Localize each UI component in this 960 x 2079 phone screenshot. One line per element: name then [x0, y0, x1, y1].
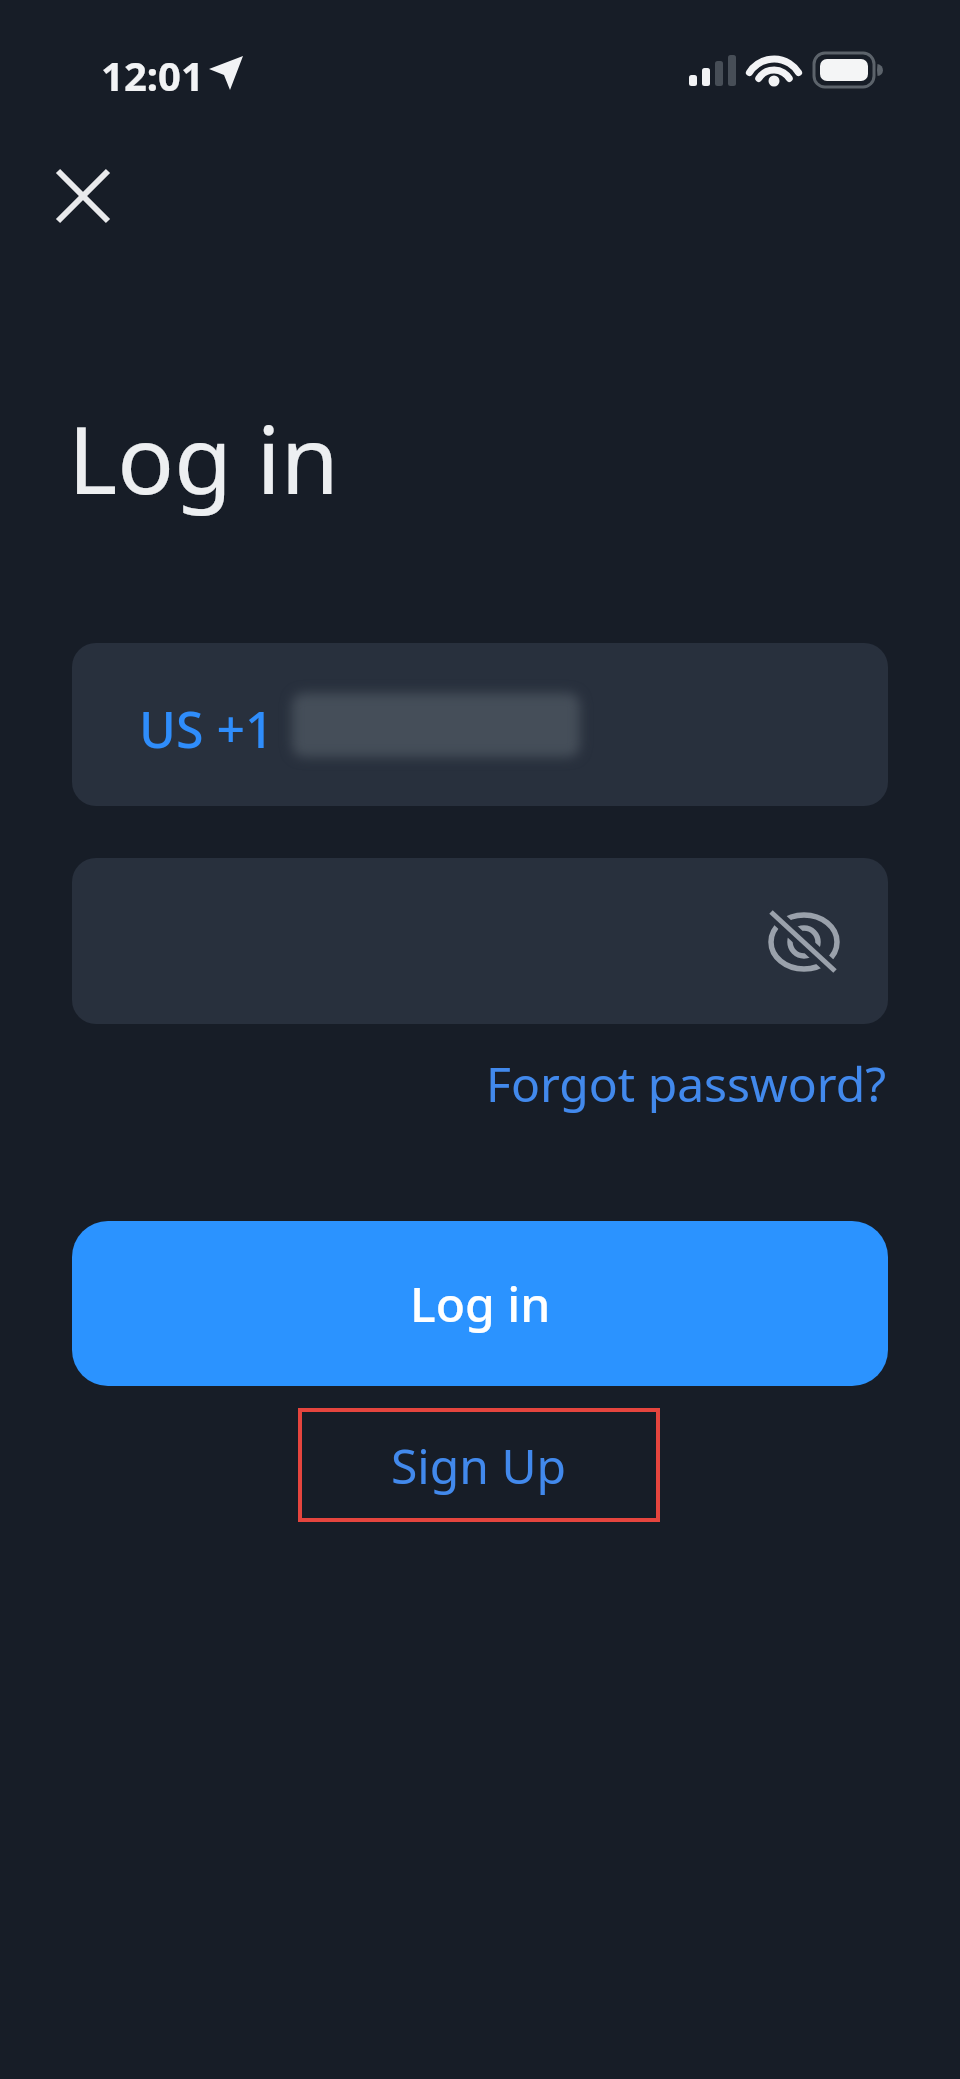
button[interactable]: Log in — [72, 1221, 888, 1386]
button[interactable] — [764, 902, 844, 982]
button[interactable]: Forgot password? — [486, 1051, 887, 1116]
staticText: Log in — [410, 1271, 551, 1336]
button[interactable]: Sign Up — [298, 1408, 660, 1522]
button[interactable] — [40, 153, 128, 241]
staticText: Forgot password? — [486, 1051, 887, 1116]
staticText: 12:01 — [101, 48, 204, 102]
staticText: Sign Up — [391, 1433, 567, 1498]
staticText: US +1 — [139, 695, 274, 763]
button[interactable] — [72, 643, 888, 806]
staticText: Log in — [68, 394, 339, 522]
button[interactable] — [72, 858, 888, 1024]
